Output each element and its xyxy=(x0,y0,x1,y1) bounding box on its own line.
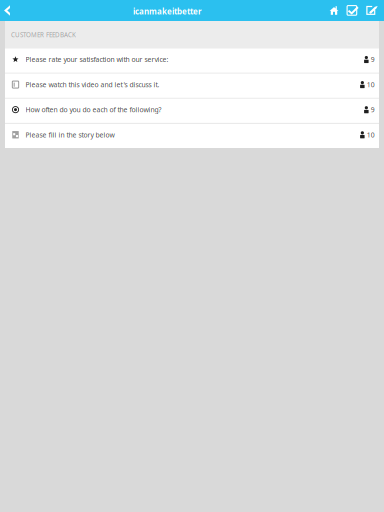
button[interactable]: Home xyxy=(324,0,343,21)
staticText: Please rate your satisfaction with our s… xyxy=(25,55,168,64)
staticText: 9 xyxy=(371,55,375,64)
button[interactable]: Please fill in the story below xyxy=(5,124,379,148)
staticText: 10 xyxy=(367,80,375,89)
button[interactable]: Surveys xyxy=(343,0,362,21)
button[interactable]: How often do you do each of the followin… xyxy=(5,99,379,124)
button[interactable]: Please watch this video and let's discus… xyxy=(5,74,379,99)
button[interactable]: Please rate your satisfaction with our s… xyxy=(5,49,379,74)
staticText: Please watch this video and let's discus… xyxy=(25,80,159,89)
staticText: 10 xyxy=(367,130,375,139)
button[interactable]: Back xyxy=(0,0,14,21)
staticText: Please fill in the story below xyxy=(25,130,114,139)
staticText: 9 xyxy=(371,105,375,114)
staticText: How often do you do each of the followin… xyxy=(25,105,161,114)
staticText: CUSTOMER FEEDBACK xyxy=(11,30,76,39)
button[interactable]: Compose xyxy=(362,0,381,21)
staticText: icanmakeitbetter xyxy=(133,6,202,17)
